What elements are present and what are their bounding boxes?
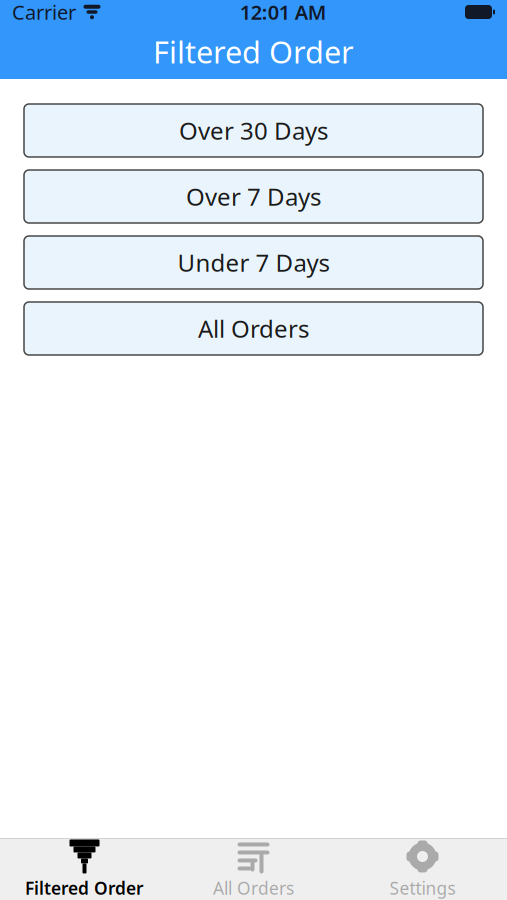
staticText: Filtered Order: [25, 876, 144, 899]
staticText: Settings: [389, 876, 455, 899]
staticText: Over 7 Days: [186, 181, 321, 212]
button[interactable]: Under 7 Days: [24, 236, 483, 289]
button[interactable]: All Orders: [169, 839, 338, 900]
staticText: All Orders: [198, 313, 309, 344]
button[interactable]: Filtered Order: [0, 839, 169, 900]
button[interactable]: Settings: [338, 839, 507, 900]
staticText: Filtered Order: [153, 31, 354, 72]
staticText: Carrier: [12, 0, 76, 25]
staticText: All Orders: [213, 876, 294, 899]
staticText: 12:01 AM: [240, 0, 327, 25]
button[interactable]: Over 30 Days: [24, 104, 483, 157]
button[interactable]: Over 7 Days: [24, 170, 483, 223]
staticText: Over 30 Days: [179, 115, 328, 146]
staticText: Under 7 Days: [177, 247, 329, 278]
button[interactable]: All Orders: [24, 302, 483, 355]
